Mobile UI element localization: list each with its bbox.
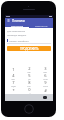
staticText: +	[29, 92, 31, 94]
staticText: Для совершения	[7, 30, 26, 33]
staticText: 9	[44, 80, 47, 85]
button[interactable]: 5	[21, 73, 37, 80]
button[interactable]: Home	[24, 104, 34, 114]
staticText: Платежи	[12, 19, 25, 23]
button[interactable]: Backspace	[43, 96, 47, 99]
button[interactable]: 7	[5, 80, 21, 87]
staticText: Закрытые	[11, 24, 24, 27]
staticText: PQRS	[11, 85, 16, 87]
button[interactable]: #	[37, 87, 53, 94]
button[interactable]: ПРОДОЛЖИТЬ	[7, 46, 51, 51]
staticText: ABC	[27, 71, 31, 73]
button[interactable]: *	[5, 87, 21, 94]
button[interactable]: 8	[21, 80, 37, 87]
button[interactable]: Зарегистр.	[29, 23, 53, 27]
button[interactable]: 3	[37, 66, 53, 73]
staticText: Номер телефона	[9, 39, 29, 42]
staticText: MNO	[43, 78, 48, 80]
button[interactable]: 9	[37, 80, 53, 87]
staticText: 3	[44, 66, 47, 71]
staticText: Зарегистр.	[35, 24, 48, 27]
staticText: ПРОДОЛЖИТЬ	[20, 47, 39, 51]
button[interactable]: 0	[21, 87, 37, 94]
button[interactable]: 4	[5, 73, 21, 80]
staticText: WXYZ	[43, 85, 48, 87]
staticText: перевода введите	[7, 34, 27, 37]
button[interactable]: Menu	[7, 19, 10, 22]
button[interactable]: Закрытые	[5, 23, 29, 27]
button[interactable]: 2	[21, 66, 37, 73]
staticText: TUV	[27, 85, 31, 87]
staticText: *	[12, 88, 15, 93]
button[interactable]: 6	[37, 73, 53, 80]
staticText: 0	[28, 87, 31, 92]
staticText: 4	[12, 73, 15, 78]
staticText: GHI	[11, 78, 15, 80]
staticText: DEF	[43, 71, 47, 73]
staticText: 2	[28, 66, 31, 71]
staticText: 6	[44, 73, 47, 78]
staticText: 5	[28, 73, 31, 78]
staticText: #	[44, 88, 47, 93]
staticText: 7	[12, 80, 15, 85]
staticText: 1	[12, 67, 15, 72]
button[interactable]: 1	[5, 66, 21, 73]
staticText: JKL	[28, 78, 31, 80]
staticText: 8	[28, 80, 31, 85]
